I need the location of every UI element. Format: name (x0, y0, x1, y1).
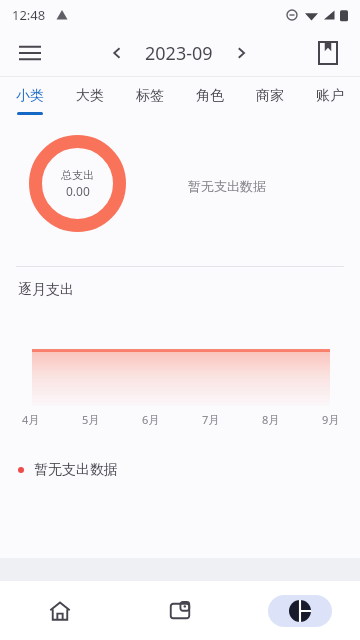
button[interactable]: Previous month (97, 33, 137, 73)
button[interactable]: 小类 (0, 77, 60, 121)
button[interactable]: Bookmark (306, 31, 350, 75)
staticText: 商家 (256, 87, 284, 105)
button[interactable]: Home (0, 581, 120, 640)
staticText: 6月 (142, 412, 160, 427)
staticText: 逐月支出 (18, 281, 74, 299)
staticText: 总支出 (61, 168, 94, 182)
button[interactable]: Statistics (240, 581, 360, 640)
staticText: 暂无支出数据 (34, 461, 118, 479)
button[interactable]: 商家 (240, 77, 300, 121)
staticText: 角色 (196, 87, 224, 105)
staticText: 7月 (202, 412, 220, 427)
staticText: 小类 (16, 87, 44, 105)
staticText: 大类 (76, 87, 104, 105)
staticText: 标签 (136, 87, 164, 105)
button[interactable]: 大类 (60, 77, 120, 121)
button[interactable]: Menu (8, 31, 52, 75)
staticText: 5月 (82, 412, 100, 427)
button[interactable]: 2023-09 (145, 41, 213, 66)
button[interactable]: Next month (221, 33, 261, 73)
button[interactable]: 标签 (120, 77, 180, 121)
staticText: 12:48 (12, 6, 46, 24)
staticText: 账户 (316, 87, 344, 105)
staticText: 4月 (22, 412, 40, 427)
button[interactable]: Wallet (120, 581, 240, 640)
staticText: 8月 (262, 412, 280, 427)
staticText: 9月 (322, 412, 340, 427)
staticText: 0.00 (66, 183, 90, 199)
button[interactable]: 角色 (180, 77, 240, 121)
staticText: 暂无支出数据 (188, 178, 266, 194)
button[interactable]: 账户 (300, 77, 360, 121)
